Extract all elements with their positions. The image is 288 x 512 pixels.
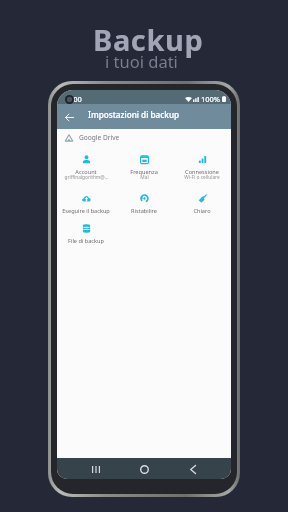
button[interactable]: Frequenza — [115, 155, 173, 183]
button[interactable]: Chiaro — [173, 194, 231, 215]
staticText: Account — [75, 168, 97, 176]
button[interactable]: Back — [57, 105, 81, 129]
button[interactable]: Recent apps — [86, 459, 106, 479]
button[interactable]: Ristabilire — [115, 194, 173, 215]
button[interactable]: Connessione — [173, 155, 231, 183]
button[interactable]: Home — [134, 459, 154, 479]
button[interactable]: File di backup — [57, 224, 115, 245]
staticText: i tuoi dati — [105, 50, 178, 72]
button[interactable]: Back — [183, 459, 203, 479]
staticText: 9:00 — [67, 94, 82, 104]
staticText: Chiaro — [193, 207, 211, 215]
staticText: Impostazioni di backup — [88, 109, 180, 120]
staticText: Connessione — [185, 168, 219, 176]
staticText: Eseguire il backup — [62, 207, 110, 215]
staticText: Backup — [93, 20, 204, 59]
button[interactable]: Account — [57, 155, 115, 183]
staticText: Ristabilire — [131, 207, 157, 215]
staticText: Mai — [140, 174, 149, 181]
staticText: griffinalgorithm@... — [64, 174, 109, 181]
staticText: File di backup — [68, 237, 104, 245]
staticText: Frequenza — [130, 168, 158, 176]
button[interactable]: Google Drive — [57, 129, 231, 146]
staticText: Wi-Fi o cellulare — [184, 174, 220, 181]
button[interactable]: Eseguire il backup — [57, 194, 115, 215]
staticText: 100% — [201, 94, 221, 104]
staticText: Google Drive — [79, 133, 120, 142]
